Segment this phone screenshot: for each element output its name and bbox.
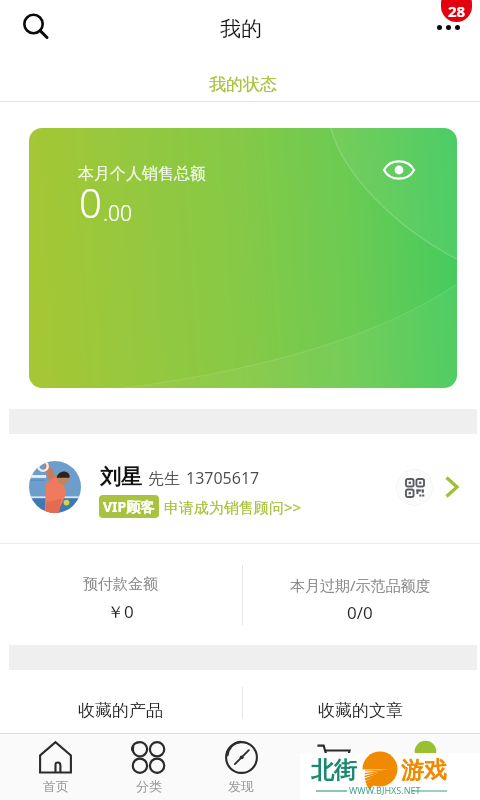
staticText: 收藏的产品 xyxy=(78,700,163,721)
staticText: 28 xyxy=(448,1,466,21)
button[interactable]: 购物车 xyxy=(287,733,379,800)
staticText: VIP顾客 xyxy=(103,497,155,516)
staticText: .00 xyxy=(103,199,133,228)
staticText: 我的 xyxy=(220,16,262,42)
staticText: 申请成为销售顾问>> xyxy=(164,497,302,517)
button[interactable]: QR code xyxy=(396,469,433,506)
button[interactable]: 发现 xyxy=(195,733,287,800)
button[interactable]: Search xyxy=(12,3,56,47)
button[interactable]: 我的 xyxy=(379,733,471,800)
staticText: 收藏的文章 xyxy=(318,700,403,721)
staticText: WWW.BJHXS.NET xyxy=(349,784,421,796)
button[interactable]: 收藏的产品 xyxy=(0,670,240,733)
staticText: 游戏 xyxy=(401,756,447,785)
staticText: 13705617 xyxy=(186,467,260,489)
staticText: 购物车 xyxy=(314,778,353,794)
button[interactable]: 我的状态 xyxy=(0,56,480,102)
button[interactable]: 预付款金额 xyxy=(0,544,240,645)
button[interactable]: 首页 xyxy=(9,733,102,800)
staticText: 本月过期/示范品额度 xyxy=(290,575,431,595)
staticText: 预付款金额 xyxy=(83,575,158,594)
staticText: 0 xyxy=(79,175,102,229)
button[interactable]: 刘星 xyxy=(0,441,480,541)
staticText: 本月个人销售总额 xyxy=(78,164,206,184)
staticText: 刘星 xyxy=(100,464,142,490)
button[interactable]: Profile details xyxy=(437,471,469,503)
staticText: ￥0 xyxy=(107,600,134,623)
button[interactable]: 本月过期/示范品额度 xyxy=(240,544,480,645)
button[interactable]: 分类 xyxy=(102,733,195,800)
button[interactable]: Toggle amount visibility xyxy=(380,151,418,189)
staticText: 0/0 xyxy=(347,601,373,624)
staticText: 我的状态 xyxy=(209,74,277,95)
staticText: 北街 xyxy=(311,756,357,785)
staticText: 首页 xyxy=(43,778,69,794)
button[interactable]: 本月个人销售总额 xyxy=(29,128,457,388)
staticText: 发现 xyxy=(228,778,254,794)
staticText: 分类 xyxy=(136,778,162,794)
button[interactable]: 收藏的文章 xyxy=(240,670,480,733)
staticText: 先生 xyxy=(148,469,180,489)
staticText: 我的 xyxy=(412,778,438,794)
button[interactable]: More options xyxy=(437,22,467,33)
